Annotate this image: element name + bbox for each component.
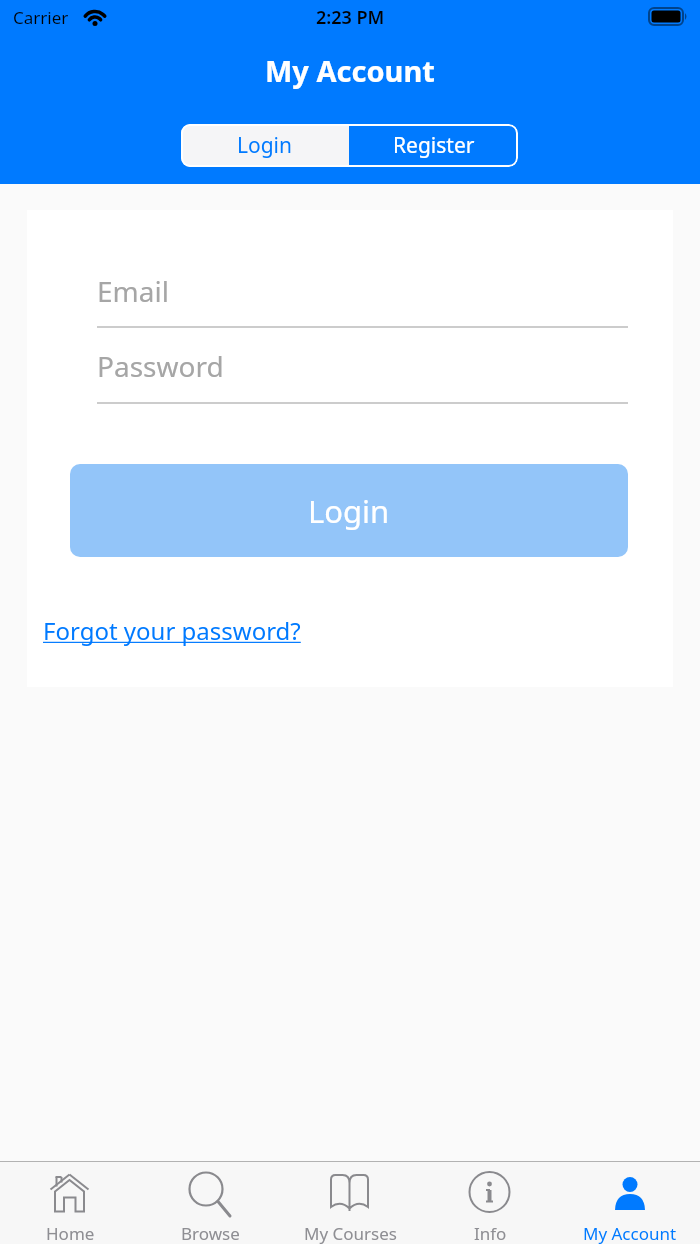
staticText: Register [393, 131, 475, 160]
button[interactable]: Browse [140, 1162, 280, 1244]
button[interactable]: Home [0, 1162, 140, 1244]
button[interactable]: Forgot your password? [43, 614, 301, 647]
staticText: Carrier [13, 6, 69, 29]
staticText: Login [237, 131, 293, 160]
button[interactable]: Login [181, 124, 349, 167]
button[interactable]: Info [420, 1162, 560, 1244]
staticText: 2:23 PM [316, 5, 385, 30]
button[interactable]: My Courses [280, 1162, 420, 1244]
staticText: My Courses [304, 1222, 397, 1244]
staticText: Email [97, 272, 169, 310]
staticText: Browse [181, 1222, 240, 1244]
staticText: Password [97, 347, 224, 385]
staticText: My Account [265, 51, 435, 90]
button[interactable]: Register [349, 124, 518, 167]
staticText: Login [308, 490, 390, 532]
staticText: Home [46, 1222, 95, 1244]
staticText: My Account [583, 1222, 677, 1244]
button[interactable]: My Account [560, 1162, 700, 1244]
staticText: Info [474, 1222, 507, 1244]
button[interactable]: Login [70, 464, 628, 557]
